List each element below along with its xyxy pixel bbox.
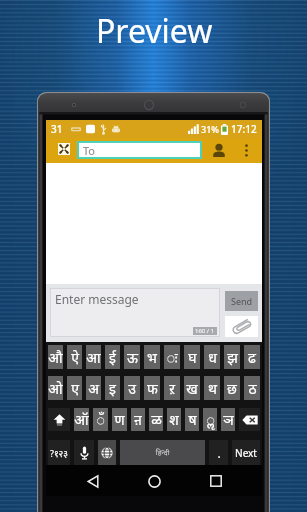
button[interactable]: आ (86, 345, 101, 369)
button[interactable]: ए (67, 376, 82, 400)
button[interactable]: Keyboard (58, 143, 70, 155)
button[interactable]: ठ (244, 376, 260, 400)
staticText: ध (208, 348, 217, 367)
button[interactable]: ञ (221, 408, 235, 431)
button[interactable]: ढ (244, 345, 260, 369)
staticText: इ (109, 379, 116, 398)
button[interactable]: ख (184, 376, 200, 400)
button[interactable]: ओ (48, 376, 63, 400)
button[interactable]: उ (124, 376, 140, 400)
staticText: ण (114, 410, 125, 429)
button[interactable]: घ (184, 345, 200, 369)
staticText: Send (231, 295, 253, 307)
staticText: . (217, 445, 221, 461)
staticText: ळ (151, 410, 162, 429)
button[interactable]: ः (164, 345, 180, 369)
staticText: ई (109, 348, 116, 367)
button[interactable]: ँ (93, 408, 108, 431)
button[interactable]: अ (86, 376, 101, 400)
staticText: ञ (223, 410, 234, 429)
staticText: झ (227, 348, 238, 367)
button[interactable]: ष (185, 408, 199, 431)
button[interactable]: इ (105, 376, 120, 400)
button[interactable]: Backspace (239, 408, 260, 431)
staticText: ऑ (74, 410, 89, 429)
staticText: ओ (48, 379, 63, 398)
staticText: ?१२३ (50, 447, 68, 459)
button[interactable]: ऩ (131, 408, 145, 431)
staticText: छ (227, 379, 237, 398)
staticText: ऊ (127, 348, 138, 367)
staticText: उ (128, 379, 136, 398)
staticText: 31 (51, 122, 63, 136)
staticText: ऱ (169, 379, 175, 398)
button[interactable]: थ (204, 376, 220, 400)
button[interactable]: Send (225, 291, 258, 311)
button[interactable]: To (77, 141, 202, 159)
staticText: 160 / 1 (195, 327, 215, 335)
button[interactable]: फ (144, 376, 160, 400)
button[interactable]: ॢ (203, 408, 217, 431)
staticText: ऐ (71, 348, 79, 367)
button[interactable]: ऊ (124, 345, 140, 369)
button[interactable]: औ (48, 345, 63, 369)
button[interactable]: Enter message (50, 288, 220, 337)
button[interactable]: भ (144, 345, 160, 369)
staticText: 31% (201, 123, 219, 135)
staticText: To (83, 143, 96, 158)
button[interactable]: श (167, 408, 181, 431)
button[interactable]: हिन्दी (120, 440, 205, 465)
button[interactable]: ऱ (164, 376, 180, 400)
staticText: थ (208, 379, 217, 398)
staticText: ठ (248, 379, 257, 398)
staticText: अ (88, 379, 99, 398)
staticText: आ (86, 348, 101, 367)
staticText: श (169, 410, 179, 429)
staticText: Next (235, 446, 257, 460)
button[interactable]: Contacts (210, 142, 227, 159)
button[interactable]: छ (224, 376, 240, 400)
button[interactable]: Back (78, 466, 108, 496)
button[interactable]: Shift (48, 408, 70, 431)
staticText: Enter message (55, 291, 139, 307)
button[interactable]: ऐ (67, 345, 82, 369)
staticText: ढ (248, 348, 256, 367)
button[interactable]: Recents (201, 466, 231, 496)
button[interactable]: ण (112, 408, 127, 431)
staticText: Preview (96, 9, 213, 53)
button[interactable]: ?१२३ (48, 440, 70, 465)
button[interactable]: Voice input (74, 440, 94, 465)
button[interactable]: . (209, 440, 228, 465)
button[interactable]: More options (240, 142, 253, 159)
staticText: 17:12 (231, 122, 257, 136)
staticText: औ (48, 348, 63, 367)
staticText: ख (186, 379, 198, 398)
button[interactable]: ऑ (74, 408, 89, 431)
staticText: ः (166, 348, 178, 367)
staticText: भ (147, 348, 157, 367)
staticText: ँ (96, 410, 105, 429)
staticText: ष (188, 410, 197, 429)
button[interactable]: ळ (149, 408, 163, 431)
button[interactable]: Next (232, 440, 260, 465)
staticText: ॢ (206, 410, 215, 429)
button[interactable]: Home (139, 466, 169, 496)
staticText: हिन्दी (156, 448, 170, 458)
button[interactable]: ध (204, 345, 220, 369)
button[interactable]: झ (224, 345, 240, 369)
staticText: फ (147, 379, 158, 398)
staticText: घ (188, 348, 197, 367)
button[interactable]: Attach file (225, 316, 258, 337)
staticText: ए (71, 379, 79, 398)
staticText: ऩ (134, 410, 142, 429)
button[interactable]: ई (105, 345, 120, 369)
button[interactable]: Change language (98, 440, 116, 465)
